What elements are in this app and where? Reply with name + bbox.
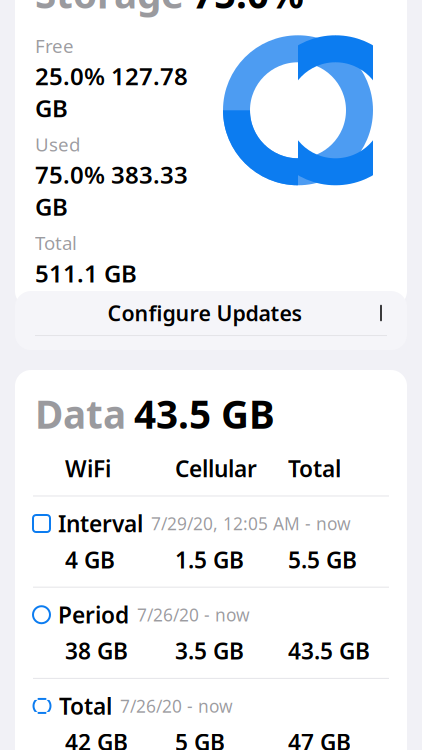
staticText: 7/26/20 - now [120, 694, 233, 717]
staticText: 38 GB [65, 636, 128, 666]
staticText: 75.0% [192, 0, 304, 19]
staticText: Total [59, 691, 112, 721]
staticText: Configure Updates [107, 299, 302, 327]
staticText: WiFi [65, 453, 111, 483]
button[interactable]: Configure Updates [15, 291, 407, 350]
button[interactable]: Interval [15, 495, 407, 587]
staticText: Cellular [175, 453, 257, 483]
staticText: 7/29/20, 12:05 AM - now [151, 512, 351, 535]
staticText: 5 GB [175, 727, 225, 750]
staticText: 4 GB [65, 545, 115, 575]
staticText: 1.5 GB [175, 545, 244, 575]
staticText: Total [288, 453, 341, 483]
button[interactable]: Total [15, 678, 407, 750]
staticText: 42 GB [65, 727, 128, 750]
staticText: 7/26/20 - now [137, 603, 250, 626]
staticText: Used [35, 132, 80, 157]
staticText: 47 GB [288, 727, 351, 750]
staticText: Data [35, 388, 126, 439]
staticText: 511.1 GB [35, 257, 137, 289]
staticText: 43.5 GB [134, 388, 275, 439]
staticText: Storage [35, 0, 184, 19]
staticText: 25.0% 127.78 GB [35, 60, 188, 124]
staticText: Free [35, 33, 74, 58]
staticText: 75.0% 383.33 GB [35, 159, 188, 222]
staticText: Total [35, 230, 77, 255]
staticText: 5.5 GB [288, 545, 357, 575]
button[interactable]: Period [15, 587, 407, 678]
staticText: 43.5 GB [288, 636, 370, 666]
staticText: Period [58, 600, 129, 630]
staticText: Interval [58, 508, 143, 539]
staticText: 3.5 GB [175, 636, 244, 666]
